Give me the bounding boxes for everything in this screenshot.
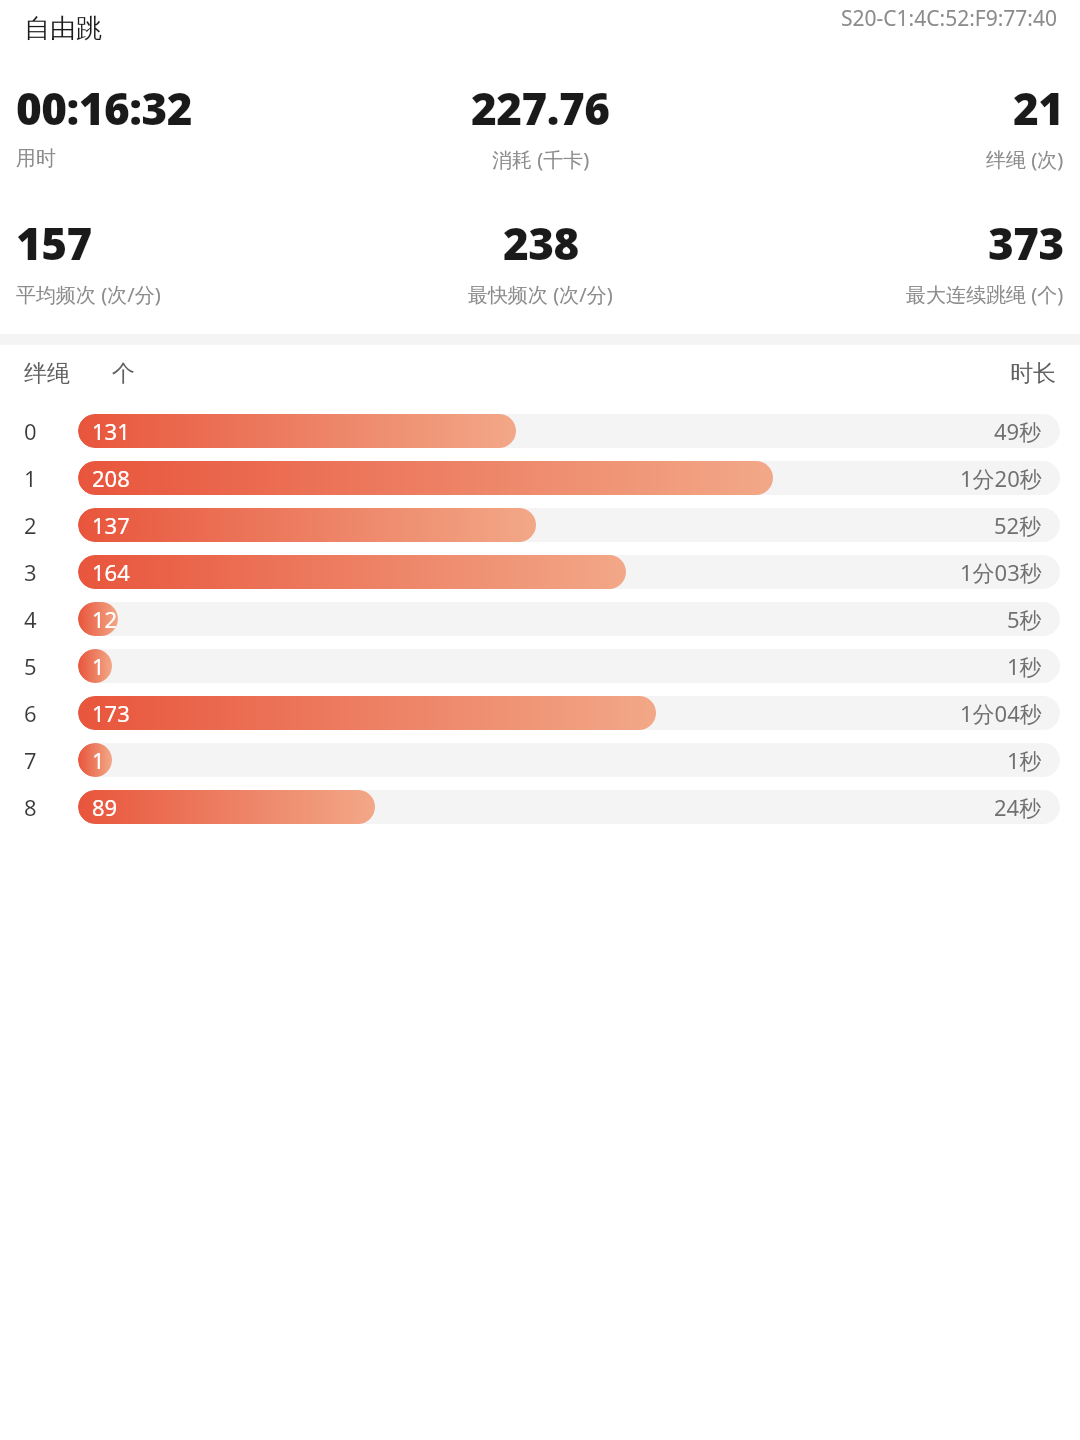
button[interactable]: 0 <box>0 407 1080 454</box>
staticText: 1 <box>92 651 105 681</box>
staticText: 绊绳 (次) <box>986 146 1064 173</box>
staticText: 自由跳 <box>24 12 102 45</box>
staticText: 157 <box>16 213 92 273</box>
staticText: 消耗 (千卡) <box>492 146 590 173</box>
staticText: 00:16:32 <box>16 78 193 138</box>
staticText: 0 <box>24 416 37 446</box>
staticText: 49秒 <box>994 416 1042 446</box>
staticText: 1分04秒 <box>960 698 1042 728</box>
staticText: 24秒 <box>994 792 1042 822</box>
staticText: 1秒 <box>1007 651 1042 681</box>
staticText: 4 <box>24 604 37 634</box>
staticText: 5 <box>24 651 37 681</box>
staticText: 3 <box>24 557 37 587</box>
staticText: 时长 <box>1010 359 1056 388</box>
staticText: 173 <box>92 698 130 728</box>
button[interactable]: 2 <box>0 501 1080 548</box>
staticText: 最快频次 (次/分) <box>468 281 613 308</box>
staticText: 1分20秒 <box>960 463 1042 493</box>
staticText: 2 <box>24 510 37 540</box>
staticText: 1秒 <box>1007 745 1042 775</box>
staticText: 1 <box>92 745 105 775</box>
staticText: 208 <box>92 463 130 493</box>
staticText: 7 <box>24 745 37 775</box>
staticText: 12 <box>92 604 118 634</box>
staticText: 1 <box>24 463 37 493</box>
button[interactable]: 6 <box>0 689 1080 736</box>
staticText: 131 <box>92 416 130 446</box>
staticText: 21 <box>1013 78 1064 138</box>
staticText: 227.76 <box>471 78 610 138</box>
staticText: 个 <box>112 359 135 388</box>
button[interactable]: 5 <box>0 642 1080 689</box>
staticText: 164 <box>92 557 130 587</box>
staticText: 52秒 <box>994 510 1042 540</box>
button[interactable]: 4 <box>0 595 1080 642</box>
staticText: 89 <box>92 792 118 822</box>
staticText: 绊绳 <box>24 359 70 388</box>
staticText: 平均频次 (次/分) <box>16 281 161 308</box>
staticText: 5秒 <box>1007 604 1042 634</box>
button[interactable]: 3 <box>0 548 1080 595</box>
staticText: 373 <box>988 213 1064 273</box>
staticText: 最大连续跳绳 (个) <box>906 281 1064 308</box>
button[interactable]: 1 <box>0 454 1080 501</box>
staticText: S20-C1:4C:52:F9:77:40 <box>841 4 1058 33</box>
staticText: 6 <box>24 698 37 728</box>
staticText: 238 <box>503 213 579 273</box>
staticText: 137 <box>92 510 130 540</box>
staticText: 8 <box>24 792 37 822</box>
button[interactable]: 8 <box>0 783 1080 830</box>
staticText: 用时 <box>16 146 56 171</box>
button[interactable]: 7 <box>0 736 1080 783</box>
staticText: 1分03秒 <box>960 557 1042 587</box>
